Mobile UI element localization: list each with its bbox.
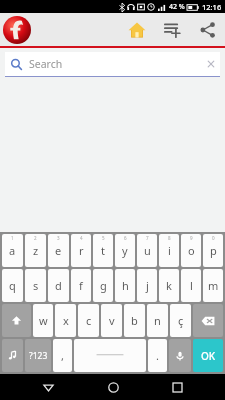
staticText: g — [100, 278, 107, 293]
button[interactable]: l — [181, 269, 201, 302]
staticText: i — [168, 243, 171, 258]
button[interactable]: Emoji — [2, 339, 23, 372]
staticText: p — [210, 243, 217, 258]
button[interactable]: q — [2, 269, 23, 302]
staticText: OK — [201, 349, 216, 363]
staticText: ?123 — [29, 350, 48, 362]
staticText: 4 — [80, 235, 83, 241]
staticText: k — [166, 278, 172, 293]
staticText: z — [33, 243, 39, 258]
staticText: j — [146, 278, 149, 293]
button[interactable]: Voice input — [169, 339, 191, 372]
button[interactable]: 7 — [137, 234, 157, 267]
button[interactable]: Home — [96, 374, 130, 400]
button[interactable]: Add to playlist — [158, 15, 187, 44]
staticText: u — [144, 243, 151, 258]
button[interactable]: m — [203, 269, 223, 302]
staticText: v — [109, 313, 115, 328]
staticText: y — [122, 243, 128, 258]
staticText: q — [9, 278, 16, 293]
staticText: 5 — [102, 235, 105, 241]
staticText: 2 — [34, 235, 37, 241]
button[interactable]: g — [93, 269, 113, 302]
button[interactable]: 4 — [71, 234, 91, 267]
button[interactable]: 9 — [181, 234, 201, 267]
staticText: t — [101, 243, 105, 258]
button[interactable]: 3 — [48, 234, 69, 267]
staticText: l — [190, 278, 193, 293]
button[interactable]: 8 — [159, 234, 179, 267]
staticText: 12:16 — [202, 2, 222, 12]
button[interactable]: Recents — [160, 374, 194, 400]
button[interactable]: c — [78, 304, 99, 337]
button[interactable]: 5 — [93, 234, 113, 267]
staticText: s — [33, 278, 39, 293]
button[interactable]: . — [148, 339, 167, 372]
button[interactable]: Share — [193, 15, 222, 44]
button[interactable]: Home — [121, 14, 152, 45]
staticText: n — [154, 313, 161, 328]
button[interactable]: j — [137, 269, 157, 302]
staticText: m — [208, 278, 219, 293]
button[interactable]: n — [147, 304, 168, 337]
button[interactable]: 2 — [25, 234, 46, 267]
staticText: . — [156, 348, 159, 363]
button[interactable]: ç — [170, 304, 191, 337]
staticText: d — [55, 278, 62, 293]
staticText: b — [131, 313, 138, 328]
staticText: f — [79, 278, 83, 293]
staticText: r — [79, 243, 84, 258]
button[interactable]: App logo — [2, 15, 32, 45]
button[interactable]: , — [53, 339, 72, 372]
button[interactable]: Backspace — [193, 304, 223, 337]
staticText: ç — [178, 313, 184, 328]
staticText: e — [55, 243, 62, 258]
staticText: 3 — [57, 235, 60, 241]
button[interactable]: Search field — [5, 52, 220, 77]
staticText: x — [63, 313, 69, 328]
button[interactable]: Back — [31, 374, 65, 400]
button[interactable]: Shift — [2, 304, 31, 337]
button[interactable]: h — [115, 269, 135, 302]
staticText: 0 — [212, 235, 215, 241]
staticText: 1 — [11, 235, 14, 241]
staticText: 6 — [124, 235, 127, 241]
button[interactable]: Space — [74, 339, 146, 372]
staticText: 9 — [190, 235, 193, 241]
button[interactable]: 1 — [2, 234, 23, 267]
staticText: 42 % — [169, 2, 185, 12]
staticText: h — [122, 278, 129, 293]
button[interactable]: s — [25, 269, 46, 302]
staticText: w — [39, 313, 48, 328]
button[interactable]: w — [33, 304, 53, 337]
button[interactable]: v — [101, 304, 122, 337]
staticText: 8 — [168, 235, 171, 241]
button[interactable]: b — [124, 304, 145, 337]
button[interactable]: ?123 — [25, 339, 51, 372]
staticText: c — [86, 313, 92, 328]
staticText: 7 — [146, 235, 149, 241]
button[interactable]: OK — [193, 339, 223, 372]
button[interactable]: 6 — [115, 234, 135, 267]
button[interactable]: x — [55, 304, 76, 337]
button[interactable]: f — [71, 269, 91, 302]
staticText: o — [188, 243, 195, 258]
button[interactable]: k — [159, 269, 179, 302]
button[interactable]: d — [48, 269, 69, 302]
staticText: Search — [29, 57, 63, 71]
button[interactable]: 0 — [203, 234, 223, 267]
staticText: , — [61, 348, 64, 363]
staticText: a — [9, 243, 16, 258]
